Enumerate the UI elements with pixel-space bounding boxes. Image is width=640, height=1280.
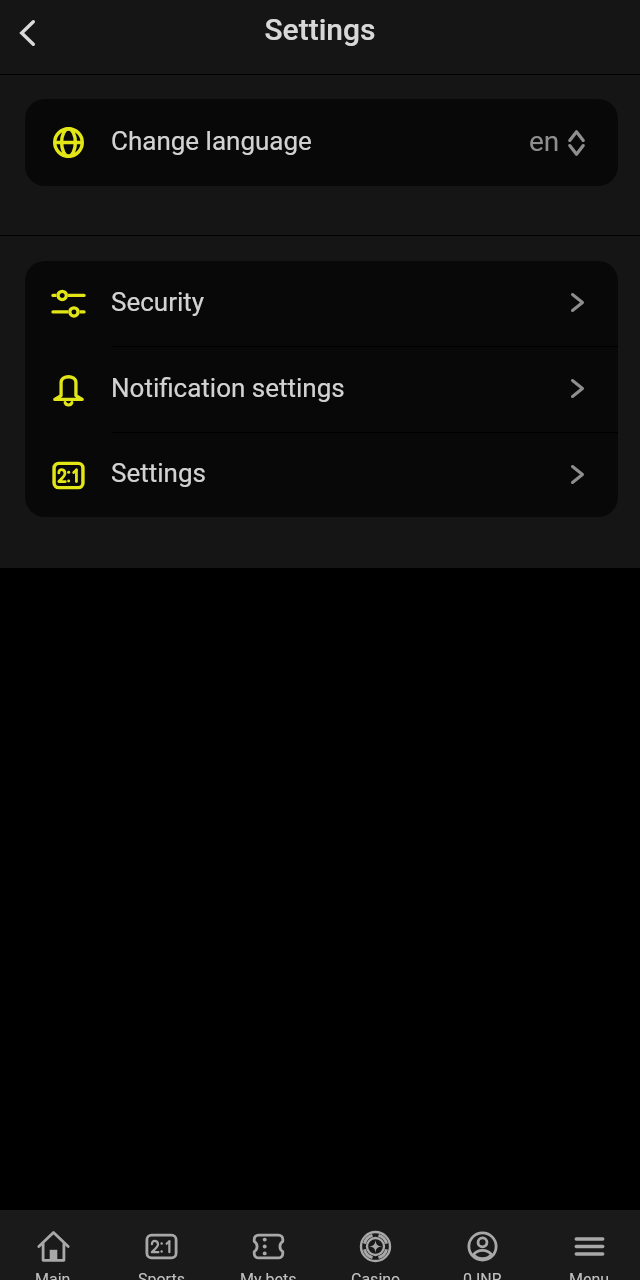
button[interactable]: Security <box>25 261 618 346</box>
button[interactable]: Main <box>0 1210 107 1280</box>
staticText: Menu <box>569 1270 610 1280</box>
staticText: 0 INR <box>463 1270 502 1280</box>
button[interactable]: Back <box>4 10 50 56</box>
button[interactable]: Change language <box>25 99 618 186</box>
button[interactable]: Menu <box>536 1210 640 1280</box>
staticText: Sports <box>138 1270 185 1280</box>
staticText: en <box>529 125 560 158</box>
staticText: Main <box>35 1270 71 1280</box>
button[interactable]: Settings <box>25 433 618 517</box>
staticText: Settings <box>111 458 206 488</box>
button[interactable]: 0 INR <box>429 1210 536 1280</box>
staticText: Casino <box>351 1270 401 1280</box>
button[interactable]: Casino <box>322 1210 429 1280</box>
button[interactable]: Sports <box>107 1210 215 1280</box>
button[interactable]: My bets <box>215 1210 322 1280</box>
staticText: Change language <box>111 126 312 156</box>
staticText: Notification settings <box>111 373 345 403</box>
button[interactable]: Notification settings <box>25 347 618 432</box>
staticText: Security <box>111 287 205 317</box>
staticText: Settings <box>264 12 376 47</box>
staticText: My bets <box>240 1270 297 1280</box>
